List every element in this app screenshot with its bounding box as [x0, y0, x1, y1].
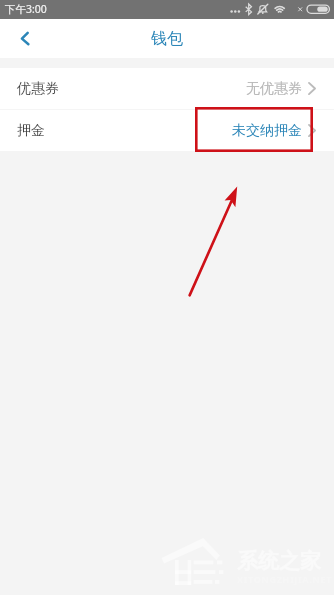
staticText: 未交纳押金: [232, 122, 302, 140]
staticText: 优惠券: [17, 80, 59, 98]
staticText: 押金: [17, 122, 45, 140]
staticText: 下午3:00: [5, 2, 47, 16]
button[interactable]: Back: [0, 19, 46, 58]
button[interactable]: 押金: [0, 110, 334, 151]
staticText: 无优惠券: [246, 80, 302, 98]
button[interactable]: 优惠券: [0, 68, 334, 109]
staticText: 钱包: [151, 29, 183, 49]
